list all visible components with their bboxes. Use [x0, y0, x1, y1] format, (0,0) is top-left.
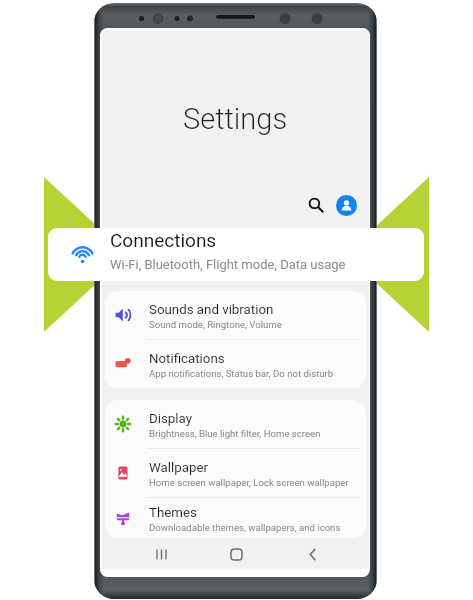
staticText: Brightness, Blue light filter, Home scre…: [149, 428, 321, 439]
staticText: Display: [149, 411, 192, 427]
button[interactable]: Back: [299, 541, 325, 567]
button[interactable]: Wallpaper: [105, 449, 366, 497]
button[interactable]: Themes: [105, 498, 366, 538]
staticText: Wi-Fi, Bluetooth, Flight mode, Data usag…: [110, 257, 346, 272]
staticText: Connections: [110, 229, 217, 251]
staticText: App notifications, Status bar, Do not di…: [149, 368, 334, 379]
staticText: Downloadable themes, wallpapers, and ico…: [149, 522, 341, 533]
button[interactable]: Search: [302, 191, 330, 219]
button[interactable]: Home: [223, 541, 249, 567]
staticText: Home screen wallpaper, Lock screen wallp…: [149, 477, 349, 488]
button[interactable]: Display: [105, 400, 366, 448]
button[interactable]: Sounds and vibration: [105, 291, 366, 339]
staticText: Sound mode, Ringtone, Volume: [149, 319, 282, 330]
staticText: Themes: [149, 505, 197, 521]
staticText: Wallpaper: [149, 460, 209, 476]
button[interactable]: Connections: [48, 228, 424, 281]
button[interactable]: Account: [336, 195, 357, 216]
button[interactable]: Recents: [148, 541, 174, 567]
staticText: Settings: [183, 102, 288, 136]
button[interactable]: Notifications: [105, 340, 366, 388]
staticText: Sounds and vibration: [149, 302, 274, 318]
staticText: Notifications: [149, 351, 225, 367]
